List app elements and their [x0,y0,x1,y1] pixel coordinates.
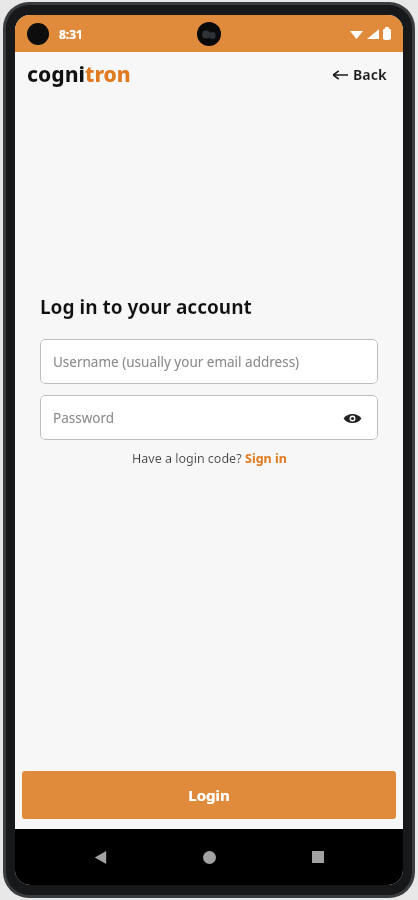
staticText: Log in to your account [40,294,252,320]
staticText: Login [188,785,230,805]
staticText: Username (usually your email address) [53,353,300,371]
button[interactable]: Back [76,833,124,881]
button[interactable]: Home [185,833,233,881]
button[interactable]: cognitron [27,60,131,89]
staticText: Have a login code? [132,450,245,467]
button[interactable]: Back [328,61,391,88]
staticText: Back [353,65,387,84]
button[interactable]: Login [22,771,396,819]
button[interactable]: Sign in [245,450,287,467]
button[interactable]: Username (usually your email address) [40,339,378,384]
button[interactable]: Show password [339,405,365,431]
button[interactable]: Recent apps [294,833,342,881]
staticText: 8:31 [59,26,83,42]
button[interactable]: Password [40,395,378,440]
staticText: Password [53,409,115,427]
